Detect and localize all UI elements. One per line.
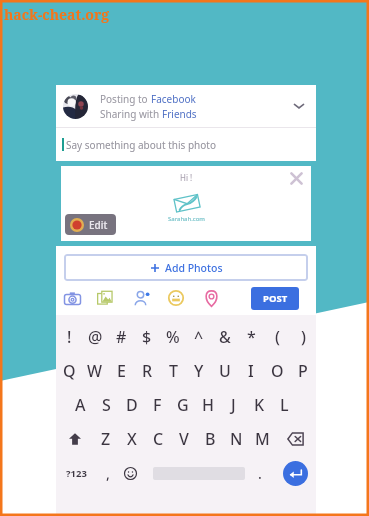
staticText: ) xyxy=(301,326,306,348)
button[interactable]: Shift xyxy=(56,422,93,456)
button[interactable]: & xyxy=(212,320,238,354)
button[interactable]: ( xyxy=(264,320,290,354)
staticText: Facebook xyxy=(151,92,196,106)
button[interactable]: Y xyxy=(186,354,212,388)
button[interactable]: J xyxy=(221,388,246,422)
staticText: O xyxy=(271,360,284,382)
staticText: X xyxy=(127,428,137,450)
staticText: $ xyxy=(142,326,152,348)
button[interactable]: ! xyxy=(56,320,82,354)
staticText: Sharing with xyxy=(100,107,162,121)
staticText: M xyxy=(255,428,270,450)
button[interactable]: N xyxy=(223,422,249,456)
staticText: L xyxy=(280,394,289,416)
staticText: * xyxy=(247,326,256,348)
staticText: J xyxy=(231,394,236,416)
button[interactable]: Tag people xyxy=(130,287,152,309)
staticText: I xyxy=(248,360,254,382)
button[interactable]: R xyxy=(134,354,160,388)
staticText: Edit xyxy=(89,218,108,232)
button[interactable]: $ xyxy=(134,320,160,354)
button[interactable]: H xyxy=(195,388,221,422)
staticText: S xyxy=(102,394,111,416)
staticText: A xyxy=(75,394,86,416)
button[interactable]: S xyxy=(93,388,119,422)
staticText: Friends xyxy=(162,107,197,121)
button[interactable]: POST xyxy=(251,287,299,310)
button[interactable]: O xyxy=(264,354,290,388)
staticText: Z xyxy=(101,428,111,450)
button[interactable]: D xyxy=(119,388,144,422)
staticText: D xyxy=(126,394,138,416)
staticText: POST xyxy=(263,292,288,305)
button[interactable]: X xyxy=(119,422,145,456)
staticText: Y xyxy=(194,360,204,382)
staticText: ^ xyxy=(194,326,204,348)
button[interactable]: Check in xyxy=(200,287,222,309)
button[interactable]: A xyxy=(68,388,93,422)
staticText: B xyxy=(205,428,216,450)
button[interactable]: F xyxy=(144,388,170,422)
button[interactable]: Photo gallery xyxy=(94,287,116,309)
button[interactable]: Z xyxy=(93,422,119,456)
button[interactable]: * xyxy=(238,320,264,354)
button[interactable]: Profile photo xyxy=(56,85,316,127)
button[interactable]: G xyxy=(170,388,195,422)
staticText: C xyxy=(153,428,164,450)
staticText: W xyxy=(87,360,103,382)
button[interactable]: Camera xyxy=(61,287,83,309)
button[interactable]: I xyxy=(238,354,264,388)
button[interactable]: Say something about this photo xyxy=(56,128,316,161)
button[interactable]: L xyxy=(272,388,297,422)
button[interactable]: ^ xyxy=(186,320,212,354)
button[interactable]: Emoji xyxy=(118,456,143,490)
staticText: U xyxy=(219,360,231,382)
button[interactable]: Enter xyxy=(275,456,316,490)
staticText: K xyxy=(254,394,265,416)
button[interactable]: W xyxy=(82,354,108,388)
staticText: Posting to xyxy=(100,92,151,106)
button[interactable]: Remove photo xyxy=(287,169,305,187)
staticText: # xyxy=(116,326,127,348)
staticText: & xyxy=(219,326,231,348)
button[interactable]: Expand audience options xyxy=(285,92,313,120)
button[interactable]: ?123 xyxy=(56,456,97,490)
button[interactable]: Q xyxy=(56,354,82,388)
button[interactable]: Backspace xyxy=(275,422,316,456)
staticText: % xyxy=(166,326,180,348)
button[interactable]: # xyxy=(108,320,134,354)
button[interactable]: B xyxy=(197,422,223,456)
staticText: ?123 xyxy=(66,467,87,480)
staticText: G xyxy=(177,394,189,416)
button[interactable]: , xyxy=(97,456,118,490)
button[interactable]: V xyxy=(171,422,197,456)
staticText: P xyxy=(298,360,308,382)
button[interactable]: M xyxy=(249,422,275,456)
button[interactable]: E xyxy=(108,354,134,388)
button[interactable]: K xyxy=(246,388,272,422)
staticText: Add Photos xyxy=(165,261,223,275)
staticText: N xyxy=(230,428,243,450)
button[interactable]: U xyxy=(212,354,238,388)
button[interactable]: @ xyxy=(82,320,108,354)
button[interactable]: % xyxy=(160,320,186,354)
staticText: @ xyxy=(88,326,103,348)
staticText: Q xyxy=(63,360,76,382)
button[interactable]: T xyxy=(160,354,186,388)
staticText: Say something about this photo xyxy=(66,138,216,152)
staticText: ! xyxy=(67,326,72,348)
staticText: T xyxy=(169,360,178,382)
staticText: ( xyxy=(275,326,280,348)
button[interactable]: Feeling xyxy=(165,287,187,309)
staticText: F xyxy=(153,394,162,416)
button[interactable]: Edit xyxy=(65,214,116,235)
button[interactable]: Profile photo xyxy=(63,94,88,119)
staticText: Hi ! xyxy=(180,172,193,183)
button[interactable]: P xyxy=(290,354,316,388)
staticText: , xyxy=(106,464,110,483)
button[interactable]: . xyxy=(245,456,275,490)
button[interactable]: Add Photos xyxy=(64,254,308,281)
button[interactable]: ) xyxy=(290,320,316,354)
button[interactable]: C xyxy=(145,422,171,456)
